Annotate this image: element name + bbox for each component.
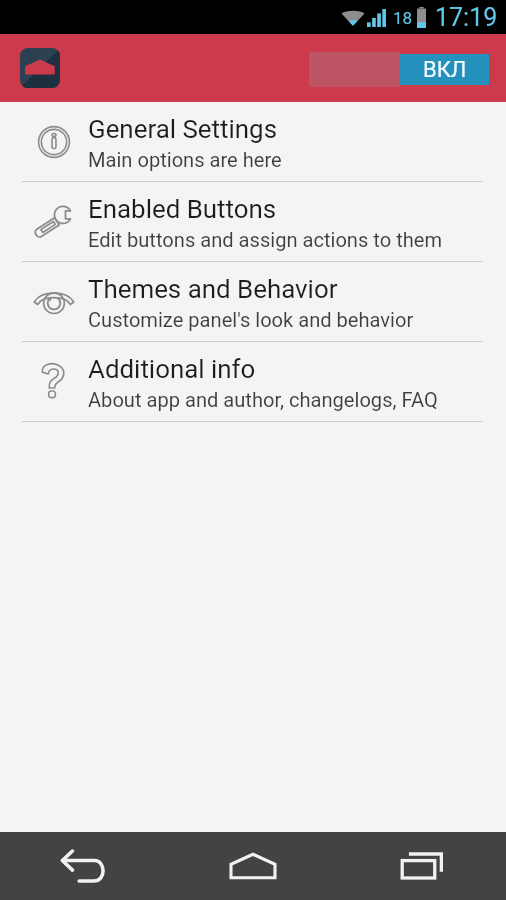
staticText: 18 bbox=[393, 8, 413, 28]
staticText: About app and author, changelogs, FAQ bbox=[88, 388, 438, 412]
button[interactable]: General Settings bbox=[0, 102, 506, 181]
staticText: 17:19 bbox=[435, 3, 498, 32]
staticText: ВКЛ bbox=[423, 57, 467, 83]
staticText: Edit buttons and assign actions to them bbox=[88, 228, 443, 252]
staticText: Enabled Buttons bbox=[88, 194, 277, 224]
staticText: Main options are here bbox=[88, 148, 282, 172]
button[interactable]: Back bbox=[39, 832, 129, 900]
button[interactable]: Home bbox=[208, 832, 298, 900]
staticText: General Settings bbox=[88, 114, 277, 144]
button[interactable]: Enabled Buttons bbox=[0, 182, 506, 261]
staticText: Additional info bbox=[88, 354, 256, 384]
button[interactable]: Enable panel bbox=[309, 52, 489, 87]
button[interactable]: App logo bbox=[20, 48, 60, 88]
button[interactable]: Themes and Behavior bbox=[0, 262, 506, 341]
button[interactable]: Recent apps bbox=[377, 832, 467, 900]
staticText: Themes and Behavior bbox=[88, 274, 338, 304]
staticText: Customize panel's look and behavior bbox=[88, 308, 414, 332]
button[interactable]: Additional info bbox=[0, 342, 506, 421]
